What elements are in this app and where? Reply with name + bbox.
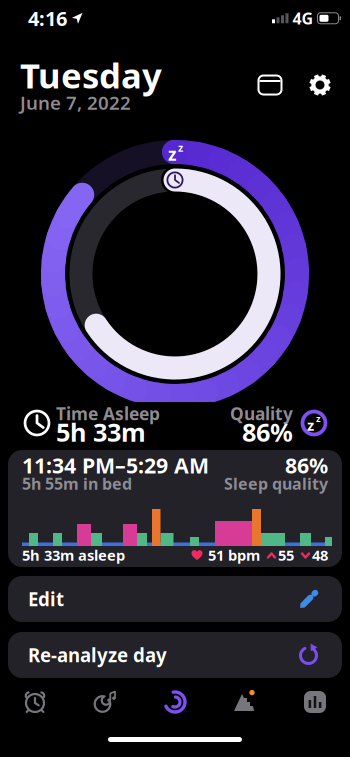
staticText: Sleep quality xyxy=(224,473,328,494)
button[interactable]: Settings xyxy=(306,71,334,99)
button[interactable]: Edit xyxy=(8,576,342,622)
staticText: June 7, 2022 xyxy=(20,90,131,115)
staticText: 86% xyxy=(285,451,328,479)
staticText: Edit xyxy=(28,587,64,611)
staticText: 5h 55m in bed xyxy=(22,473,132,494)
staticText: z xyxy=(178,140,183,155)
staticText: Quality xyxy=(230,402,293,425)
staticText: 5h 33m xyxy=(56,415,146,449)
staticText: 4:16 xyxy=(28,5,67,32)
staticText: 11:34 PM–5:29 AM xyxy=(22,451,209,479)
staticText: 86% xyxy=(242,415,293,449)
staticText: 5h 33m asleep xyxy=(22,545,125,565)
button[interactable]: Sleep xyxy=(70,680,140,724)
staticText: 4G xyxy=(292,8,313,29)
button[interactable]: Calendar xyxy=(256,71,284,99)
staticText: Tuesday xyxy=(20,52,162,98)
staticText: 51 bpm xyxy=(208,545,260,565)
staticText: z xyxy=(168,142,177,165)
staticText: 48 xyxy=(312,545,328,565)
button[interactable]: Readiness xyxy=(210,680,280,724)
staticText: z xyxy=(316,412,321,425)
button[interactable]: 11:34 PM–5:29 AM xyxy=(8,450,342,567)
staticText: Time Asleep xyxy=(56,402,160,425)
staticText: Re-analyze day xyxy=(28,643,167,667)
button[interactable]: Clock xyxy=(0,680,70,724)
staticText: 55 xyxy=(278,545,294,565)
button[interactable]: Today xyxy=(140,680,210,724)
staticText: z xyxy=(307,415,314,435)
button[interactable]: Re-analyze day xyxy=(8,632,342,678)
button[interactable]: History xyxy=(280,680,350,724)
